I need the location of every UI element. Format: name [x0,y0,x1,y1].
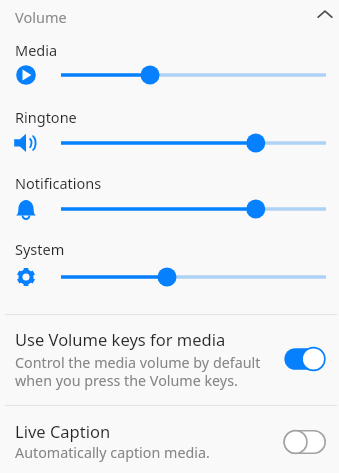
button[interactable] [0,34,339,92]
button[interactable] [0,406,339,473]
button[interactable] [0,315,339,405]
staticText: Volume [15,7,67,27]
staticText: Media [15,40,58,60]
button[interactable] [0,167,339,225]
other: Collapse [315,8,335,28]
staticText: Use Volume keys for media [15,328,226,350]
button[interactable]: Toggle off [278,424,334,460]
button[interactable]: Volume [0,0,339,36]
button[interactable]: Toggle on [278,341,334,377]
button[interactable] [0,101,339,159]
staticText: System [15,239,65,259]
staticText: Ringtone [15,107,77,127]
staticText: Notifications [15,173,102,193]
staticText: when you press the Volume keys. [15,371,238,390]
staticText: Control the media volume by default [15,353,261,372]
button[interactable] [0,233,339,291]
staticText: Live Caption [15,420,111,442]
staticText: Automatically caption media. [15,443,210,462]
